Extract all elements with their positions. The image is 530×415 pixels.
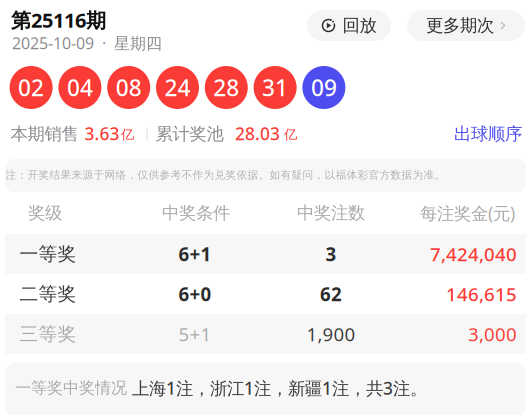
staticText: 回放: [342, 15, 376, 36]
staticText: 3: [325, 242, 336, 266]
staticText: 累计奖池: [155, 123, 223, 145]
staticText: 2025-10-09 · 星期四: [12, 32, 162, 54]
staticText: 6+0: [178, 282, 211, 306]
staticText: 6+1: [178, 242, 211, 266]
staticText: 亿: [121, 126, 134, 143]
button[interactable]: 出球顺序: [454, 123, 522, 145]
staticText: 每注奖金(元): [420, 201, 515, 224]
staticText: 04: [67, 72, 93, 102]
staticText: 一等奖中奖情况: [15, 378, 132, 398]
staticText: 上海1注，浙江1注，新疆1注，共3注。: [132, 376, 427, 399]
staticText: 08: [116, 72, 142, 102]
staticText: 亿: [284, 126, 297, 143]
staticText: 本期销售: [10, 123, 78, 145]
staticText: 3.63: [84, 122, 119, 145]
staticText: 注：开奖结果来源于网络，仅供参考不作为兑奖依据。如有疑问，以福体彩官方数据为准。: [5, 168, 445, 181]
staticText: 28.03: [235, 122, 280, 145]
staticText: 62: [320, 282, 342, 306]
button[interactable]: 回放: [307, 10, 391, 41]
staticText: 出球顺序: [454, 123, 522, 145]
staticText: 5+1: [178, 322, 211, 346]
staticText: 31: [262, 72, 288, 102]
staticText: 24: [164, 72, 190, 102]
staticText: 7,424,040: [430, 242, 517, 266]
staticText: 奖级: [28, 202, 62, 224]
staticText: 一等奖: [19, 242, 76, 265]
staticText: 第25116期: [11, 7, 106, 33]
staticText: 二等奖: [19, 282, 76, 305]
staticText: 更多期次: [426, 15, 494, 36]
staticText: 28: [213, 72, 239, 102]
staticText: 1,900: [306, 322, 355, 346]
staticText: 02: [18, 72, 44, 102]
staticText: 146,615: [446, 282, 517, 306]
button[interactable]: 更多期次: [407, 10, 525, 41]
staticText: 3,000: [468, 322, 517, 346]
staticText: 三等奖: [19, 322, 76, 345]
staticText: 中奖注数: [297, 202, 365, 224]
staticText: 中奖条件: [162, 202, 230, 224]
staticText: 09: [311, 72, 337, 102]
